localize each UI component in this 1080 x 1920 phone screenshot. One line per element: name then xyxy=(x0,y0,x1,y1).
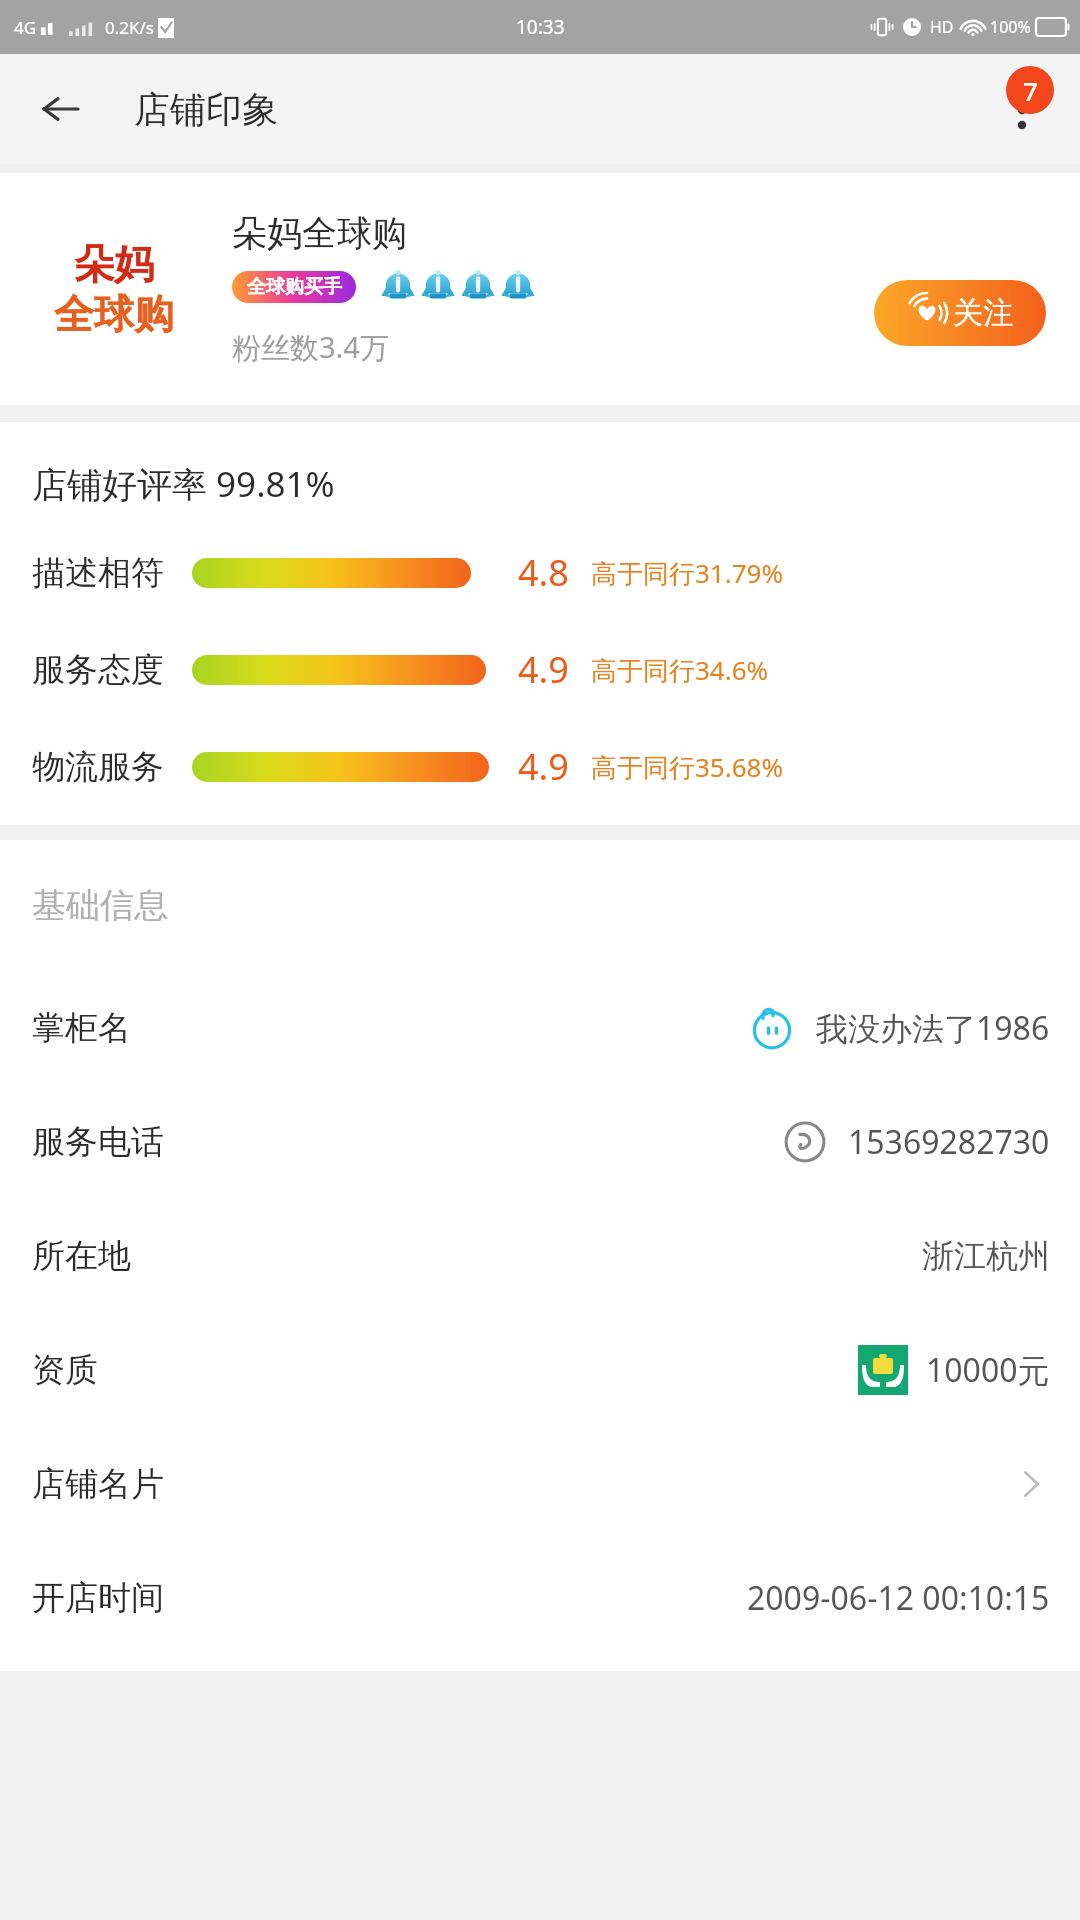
staticText: 开店时间 xyxy=(32,1577,164,1619)
staticText: 10000元 xyxy=(926,1348,1050,1392)
staticText: 店铺名片 xyxy=(32,1463,164,1505)
staticText: 4.9 xyxy=(518,645,569,694)
staticText: 服务态度 xyxy=(32,649,164,691)
staticText: 高于同行34.6% xyxy=(591,652,769,688)
staticText: 朵妈全球购 xyxy=(232,211,407,255)
staticText: HD xyxy=(930,16,954,38)
staticText: 15369282730 xyxy=(848,1120,1050,1164)
staticText: 店铺印象 xyxy=(134,87,278,132)
staticText: 4.8 xyxy=(518,548,569,597)
staticText: 10:33 xyxy=(516,14,565,40)
staticText: 物流服务 xyxy=(32,746,164,788)
staticText: 所在地 xyxy=(32,1235,131,1277)
staticText: 资质 xyxy=(32,1349,98,1391)
staticText: 全球购 xyxy=(54,289,174,339)
staticText: 朵妈 xyxy=(74,239,154,289)
staticText: 高于同行35.68% xyxy=(591,749,784,785)
button[interactable]: Back xyxy=(30,79,90,139)
staticText: 服务电话 xyxy=(32,1121,164,1163)
staticText: 关注 xyxy=(953,294,1013,332)
staticText: 0.2K/s xyxy=(105,16,154,39)
staticText: 7 xyxy=(1023,73,1038,108)
staticText: 4G xyxy=(14,16,37,39)
staticText: 浙江杭州 xyxy=(922,1236,1050,1276)
staticText: 高于同行31.79% xyxy=(591,555,784,591)
staticText: 粉丝数3.4万 xyxy=(232,327,389,367)
staticText: 全球购买手 xyxy=(247,275,342,299)
button[interactable]: 关注 xyxy=(874,280,1046,346)
staticText: 100% xyxy=(990,16,1031,38)
staticText: 2009-06-12 00:10:15 xyxy=(747,1576,1050,1620)
staticText: 店铺好评率 99.81% xyxy=(32,460,335,508)
staticText: 掌柜名 xyxy=(32,1007,131,1049)
button[interactable]: More options xyxy=(986,73,1058,145)
staticText: 4.9 xyxy=(518,742,569,791)
staticText: 基础信息 xyxy=(32,884,168,927)
staticText: 我没办法了1986 xyxy=(816,1006,1050,1050)
staticText: 描述相符 xyxy=(32,552,164,594)
button[interactable]: 店铺名片 xyxy=(0,1427,1080,1541)
